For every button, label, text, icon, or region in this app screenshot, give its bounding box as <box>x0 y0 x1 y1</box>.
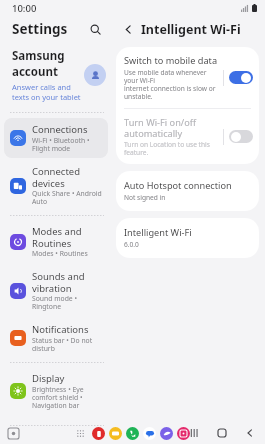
staticText: Settings <box>12 20 68 38</box>
staticText: 6.0.0 <box>124 240 139 249</box>
staticText: Modes and Routines <box>32 225 104 249</box>
button[interactable]: My Files <box>109 427 122 440</box>
button[interactable]: Back <box>242 425 258 441</box>
staticText: Intelligent Wi-Fi <box>124 226 192 239</box>
button[interactable]: Connections <box>4 118 108 158</box>
staticText: Status bar • Do not disturb <box>32 336 104 353</box>
button[interactable]: Samsung <box>0 42 112 108</box>
staticText: Turn Wi-Fi on/off automatically <box>124 116 219 139</box>
button[interactable]: Switch to mobile data <box>116 47 259 108</box>
staticText: Switch to mobile data <box>124 54 218 67</box>
staticText: Modes • Routines <box>32 249 88 258</box>
button[interactable]: Modes and Routines <box>4 220 108 263</box>
staticText: Connections <box>32 123 88 136</box>
button[interactable]: Notifications <box>4 318 108 358</box>
button[interactable]: Back <box>118 19 138 39</box>
staticText: Samsung <box>12 48 65 64</box>
staticText: texts on your tablet <box>12 92 81 102</box>
button[interactable]: Sounds and vibration <box>4 265 108 316</box>
button[interactable]: All apps <box>74 427 87 440</box>
staticText: Use mobile data whenever your Wi-Fi inte… <box>124 68 219 101</box>
button[interactable]: Search <box>86 20 104 38</box>
staticText: Sound mode • Ringtone <box>32 294 104 311</box>
button[interactable]: Intelligent Wi-Fi <box>116 218 259 258</box>
staticText: account <box>12 64 58 80</box>
button[interactable]: Turn Wi-Fi on/off automatically <box>229 130 253 143</box>
staticText: Display <box>32 372 65 385</box>
staticText: 10:00 <box>12 2 37 15</box>
staticText: Sounds and vibration <box>32 270 104 294</box>
staticText: Answer calls and <box>12 82 71 92</box>
button[interactable]: Internet <box>160 427 173 440</box>
staticText: Brightness • Eye comfort shield • Naviga… <box>32 385 104 410</box>
button[interactable]: Recents <box>186 425 202 441</box>
button[interactable]: Turn Wi-Fi on/off automatically <box>116 109 259 164</box>
button[interactable]: Phone <box>126 427 139 440</box>
button[interactable]: Home <box>214 425 230 441</box>
staticText: Auto Hotspot connection <box>124 179 232 192</box>
staticText: Not signed in <box>124 193 166 202</box>
button[interactable]: Display <box>4 367 108 415</box>
button[interactable]: Messages <box>143 427 156 440</box>
staticText: Notifications <box>32 323 89 336</box>
button[interactable]: Gallery <box>177 427 190 440</box>
button[interactable]: Auto Hotspot connection <box>116 171 259 211</box>
staticText: Turn on Location to use this feature. <box>124 140 219 157</box>
staticText: Intelligent Wi-Fi <box>141 21 241 38</box>
button[interactable]: Samsung Flip <box>92 427 105 440</box>
staticText: Connected devices <box>32 165 104 189</box>
staticText: Wi-Fi • Bluetooth • Flight mode <box>32 136 104 153</box>
staticText: Quick Share • Android Auto <box>32 189 104 206</box>
button[interactable]: Recent app <box>7 427 20 440</box>
button[interactable]: Connected devices <box>4 160 108 211</box>
button[interactable]: Switch to mobile data <box>229 71 253 84</box>
